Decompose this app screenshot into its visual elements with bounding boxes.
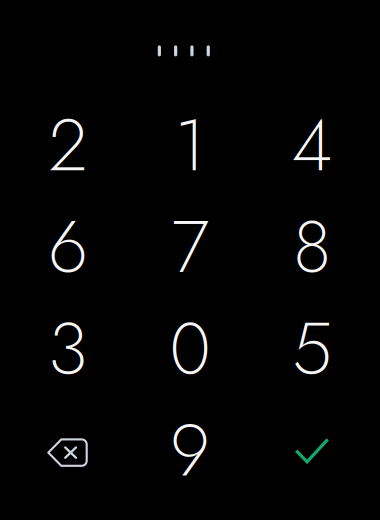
button[interactable]: 0 — [129, 298, 251, 400]
button[interactable]: 5 — [251, 298, 373, 400]
staticText: 6 — [48, 195, 88, 299]
button[interactable]: 9 — [129, 400, 251, 501]
button[interactable]: 8 — [251, 196, 373, 298]
button[interactable]: 4 — [251, 94, 373, 196]
button[interactable]: 3 — [7, 298, 129, 400]
staticText: 5 — [292, 297, 332, 401]
button[interactable]: 6 — [7, 196, 129, 298]
button[interactable]: 1 — [129, 94, 251, 196]
staticText: 1 — [174, 93, 205, 197]
button[interactable]: Delete — [7, 400, 129, 501]
staticText: 7 — [171, 195, 208, 299]
button[interactable]: Confirm — [251, 400, 373, 501]
staticText: 0 — [169, 297, 210, 401]
button[interactable]: 2 — [7, 94, 129, 196]
staticText: 8 — [293, 195, 331, 299]
button[interactable]: 7 — [129, 196, 251, 298]
staticText: 9 — [170, 399, 210, 503]
staticText: 3 — [48, 297, 88, 401]
staticText: 4 — [291, 93, 332, 197]
staticText: 2 — [48, 93, 87, 197]
